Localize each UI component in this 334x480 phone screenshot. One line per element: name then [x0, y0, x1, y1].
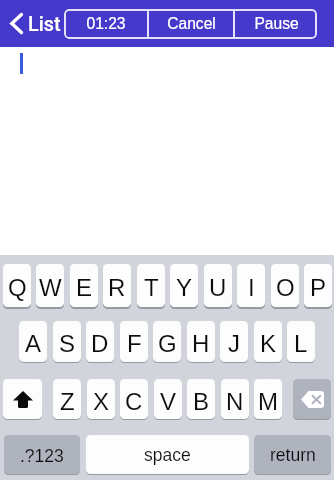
- staticText: S: [59, 330, 76, 357]
- button[interactable]: T: [137, 264, 165, 307]
- staticText: D: [91, 330, 109, 357]
- button[interactable]: D: [86, 321, 114, 362]
- button[interactable]: B: [187, 379, 215, 419]
- button[interactable]: X: [87, 379, 115, 419]
- button[interactable]: P: [304, 264, 332, 307]
- button[interactable]: 01:23: [64, 9, 147, 39]
- staticText: U: [209, 274, 227, 301]
- button[interactable]: N: [221, 379, 249, 419]
- button[interactable]: J: [220, 321, 248, 362]
- staticText: H: [192, 330, 210, 357]
- staticText: Y: [176, 274, 193, 301]
- button[interactable]: return: [254, 435, 331, 474]
- button[interactable]: K: [254, 321, 282, 362]
- staticText: .?123: [20, 446, 64, 466]
- staticText: return: [270, 445, 316, 465]
- button[interactable]: Q: [3, 264, 31, 307]
- staticText: Pause: [254, 15, 299, 32]
- staticText: P: [310, 274, 327, 301]
- staticText: T: [144, 274, 159, 301]
- staticText: M: [258, 388, 278, 415]
- staticText: B: [193, 388, 210, 415]
- staticText: L: [294, 330, 308, 357]
- button[interactable]: O: [271, 264, 299, 307]
- staticText: W: [39, 274, 62, 301]
- button[interactable]: Cancel: [149, 9, 233, 39]
- staticText: Cancel: [167, 15, 216, 32]
- staticText: V: [160, 388, 177, 415]
- button[interactable]: C: [120, 379, 148, 419]
- button[interactable]: F: [120, 321, 148, 362]
- staticText: F: [127, 330, 142, 357]
- button[interactable]: Z: [53, 379, 81, 419]
- button[interactable]: S: [53, 321, 81, 362]
- staticText: List: [28, 13, 61, 36]
- button[interactable]: I: [237, 264, 265, 307]
- staticText: N: [226, 388, 244, 415]
- staticText: Z: [60, 388, 75, 415]
- button[interactable]: M: [254, 379, 282, 419]
- staticText: A: [25, 330, 42, 357]
- button[interactable]: G: [153, 321, 181, 362]
- staticText: Q: [8, 274, 27, 301]
- staticText: R: [108, 274, 126, 301]
- staticText: K: [260, 330, 277, 357]
- button[interactable]: E: [70, 264, 98, 307]
- staticText: G: [158, 330, 177, 357]
- staticText: C: [125, 388, 143, 415]
- button[interactable]: Shift: [3, 379, 42, 419]
- staticText: 01:23: [86, 15, 126, 32]
- staticText: J: [228, 330, 240, 357]
- button[interactable]: space: [86, 435, 249, 474]
- staticText: O: [276, 274, 295, 301]
- button[interactable]: L: [287, 321, 315, 362]
- staticText: X: [93, 388, 110, 415]
- button[interactable]: Pause: [235, 9, 317, 39]
- button[interactable]: Backspace: [293, 379, 331, 419]
- staticText: E: [76, 274, 93, 301]
- button[interactable]: U: [204, 264, 232, 307]
- staticText: I: [248, 274, 255, 301]
- button[interactable]: W: [36, 264, 64, 307]
- button[interactable]: List: [10, 10, 61, 37]
- button[interactable]: R: [103, 264, 131, 307]
- button[interactable]: H: [187, 321, 215, 362]
- button[interactable]: Y: [170, 264, 198, 307]
- button[interactable]: V: [154, 379, 182, 419]
- staticText: space: [144, 445, 191, 465]
- button[interactable]: .?123: [4, 435, 80, 474]
- button[interactable]: A: [19, 321, 47, 362]
